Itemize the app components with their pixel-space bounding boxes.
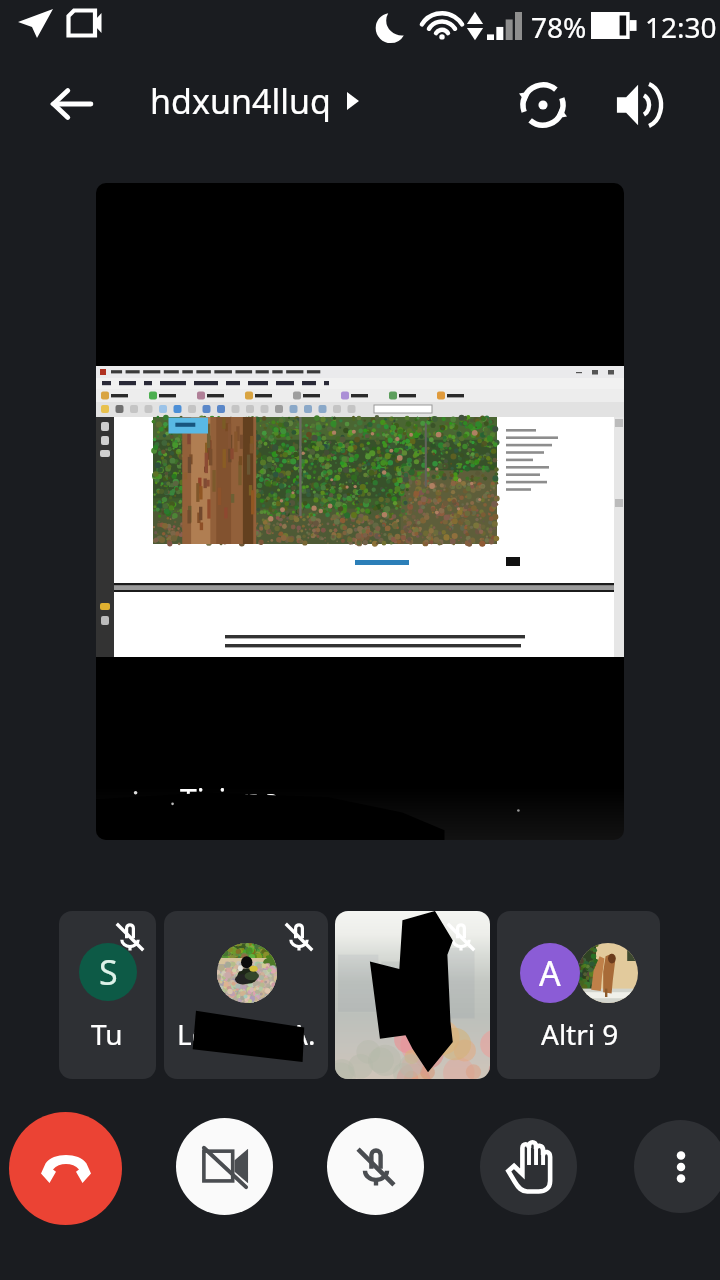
button[interactable]: Lorenzo A. xyxy=(164,911,328,1079)
staticText: Tu xyxy=(91,1015,123,1053)
button[interactable]: Raise hand xyxy=(480,1118,577,1215)
button[interactable] xyxy=(335,911,490,1079)
button[interactable]: More options xyxy=(634,1120,720,1213)
button[interactable]: Speaker xyxy=(606,72,672,138)
button[interactable]: Back xyxy=(42,74,102,134)
button[interactable]: hdxun4lluq xyxy=(150,78,359,124)
staticText: 12:30 xyxy=(645,8,717,46)
staticText: Altri 9 xyxy=(541,1015,619,1053)
staticText: S xyxy=(99,949,118,995)
button[interactable]: Switch camera xyxy=(510,72,576,138)
staticText: hdxun4lluq xyxy=(150,78,331,124)
staticText: A xyxy=(539,950,561,996)
button[interactable]: A xyxy=(497,911,660,1079)
staticText: 78% xyxy=(531,8,587,46)
button[interactable]: S xyxy=(59,911,156,1079)
button[interactable]: Microphone off xyxy=(327,1118,424,1215)
button[interactable]: Tiziano xyxy=(96,183,624,840)
button[interactable]: End call xyxy=(9,1112,122,1225)
button[interactable]: Camera off xyxy=(176,1118,273,1215)
staticText: Tiziano xyxy=(180,779,280,820)
staticText: Lorenzo A. xyxy=(177,1015,316,1053)
